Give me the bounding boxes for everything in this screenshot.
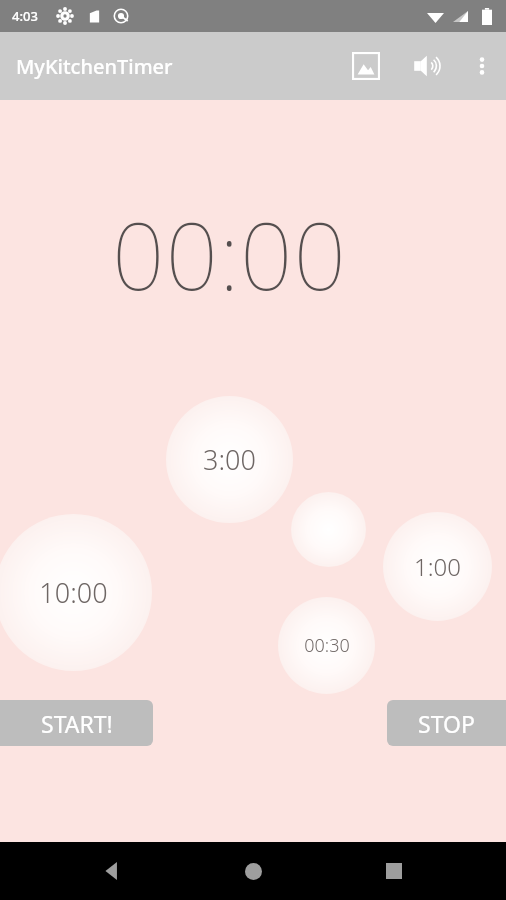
button[interactable]: Sound bbox=[404, 42, 452, 90]
button[interactable]: Back bbox=[85, 843, 141, 899]
staticText: 3:00 bbox=[203, 441, 256, 478]
button[interactable]: Home bbox=[225, 843, 281, 899]
button[interactable]: 10:00 bbox=[0, 514, 152, 671]
button[interactable]: More options bbox=[458, 42, 506, 90]
button[interactable]: Recent apps bbox=[366, 843, 422, 899]
button[interactable]: 1:00 bbox=[383, 512, 492, 621]
button[interactable]: 3:00 bbox=[166, 396, 293, 523]
button[interactable]: STOP bbox=[387, 700, 506, 746]
staticText: 4:03 bbox=[12, 7, 38, 25]
button[interactable]: START! bbox=[0, 700, 153, 746]
button[interactable]: Choose image bbox=[342, 42, 390, 90]
staticText: STOP bbox=[418, 708, 475, 739]
staticText: MyKitchenTimer bbox=[16, 53, 173, 80]
staticText: 1:00 bbox=[414, 550, 461, 583]
staticText: 00:30 bbox=[304, 633, 350, 658]
staticText: 10:00 bbox=[39, 574, 108, 611]
button[interactable] bbox=[291, 492, 366, 567]
staticText: 00:00 bbox=[112, 192, 348, 317]
staticText: START! bbox=[41, 708, 113, 739]
button[interactable]: 00:30 bbox=[278, 597, 375, 694]
